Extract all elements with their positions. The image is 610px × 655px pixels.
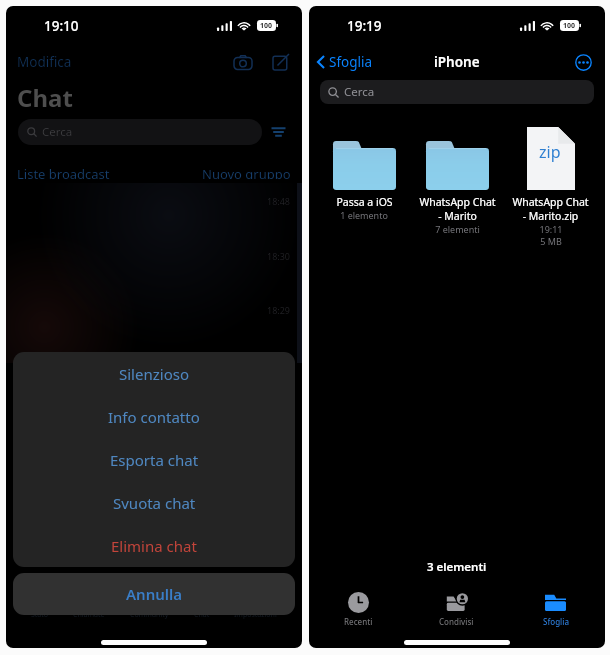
staticText: zip [539, 141, 561, 163]
staticText: Annulla [126, 584, 183, 604]
staticText: Silenzioso [119, 364, 189, 384]
staticText: 19:11 [539, 223, 563, 235]
button[interactable]: Filter chats [267, 121, 289, 143]
staticText: Info contatto [108, 407, 200, 427]
staticText: Chat [194, 610, 210, 620]
button[interactable]: Modifica [17, 53, 72, 71]
button[interactable]: Silenzioso [13, 352, 295, 395]
button[interactable]: Passa a iOS [317, 127, 411, 221]
button[interactable]: Sfoglia [315, 49, 375, 75]
staticText: Svuota chat [113, 493, 196, 513]
staticText: Sfoglia [329, 53, 373, 71]
staticText: Cerca [42, 124, 73, 140]
staticText: 18:48 [267, 195, 291, 207]
staticText: 100 [260, 21, 273, 31]
staticText: Chiamate [73, 610, 105, 620]
button[interactable]: Recenti [309, 590, 407, 632]
staticText: 19:19 [347, 17, 382, 35]
button[interactable]: Liste broadcast [17, 165, 110, 179]
button[interactable]: Camera [230, 49, 256, 75]
staticText: 3 elementi [427, 559, 487, 575]
button[interactable]: Nuovo gruppo [202, 165, 291, 179]
staticText: 100 [563, 21, 576, 31]
staticText: Chat [17, 81, 73, 114]
button[interactable]: Sfoglia [506, 590, 605, 632]
staticText: 18:30 [267, 250, 291, 262]
staticText: Recenti [344, 616, 373, 627]
button[interactable]: Cerca [320, 80, 594, 104]
staticText: Elimina chat [111, 536, 197, 556]
button[interactable]: New chat [268, 49, 294, 75]
button[interactable]: More options [572, 51, 594, 73]
staticText: Cerca [344, 84, 375, 100]
staticText: Esporta chat [110, 450, 199, 470]
staticText: WhatsApp Chat - Marito.zip [512, 195, 589, 223]
staticText: 19:10 [44, 17, 79, 35]
staticText: WhatsApp Chat - Marito [419, 195, 496, 223]
staticText: Sfoglia [543, 616, 569, 627]
staticText: 18:29 [267, 304, 291, 316]
button[interactable]: Svuota chat [13, 481, 295, 524]
button[interactable]: Condivisi [407, 590, 506, 632]
button[interactable]: Elimina chat [13, 524, 295, 567]
staticText: Impostazioni [234, 610, 277, 620]
staticText: Passa a iOS [336, 195, 393, 209]
staticText: 5 MB [540, 235, 562, 247]
staticText: Community [130, 610, 169, 620]
button[interactable]: Info contatto [13, 395, 295, 438]
staticText: iPhone [434, 53, 480, 71]
button[interactable]: WhatsApp Chat - Marito [411, 127, 504, 235]
staticText: 7 elementi [435, 223, 480, 235]
staticText: Stato [31, 610, 49, 620]
button[interactable]: zip [504, 127, 597, 247]
staticText: 1 elemento [340, 209, 388, 221]
button[interactable]: Esporta chat [13, 438, 295, 481]
button[interactable]: Annulla [13, 573, 295, 615]
staticText: Condivisi [439, 616, 474, 627]
button[interactable]: Cerca [18, 119, 262, 145]
